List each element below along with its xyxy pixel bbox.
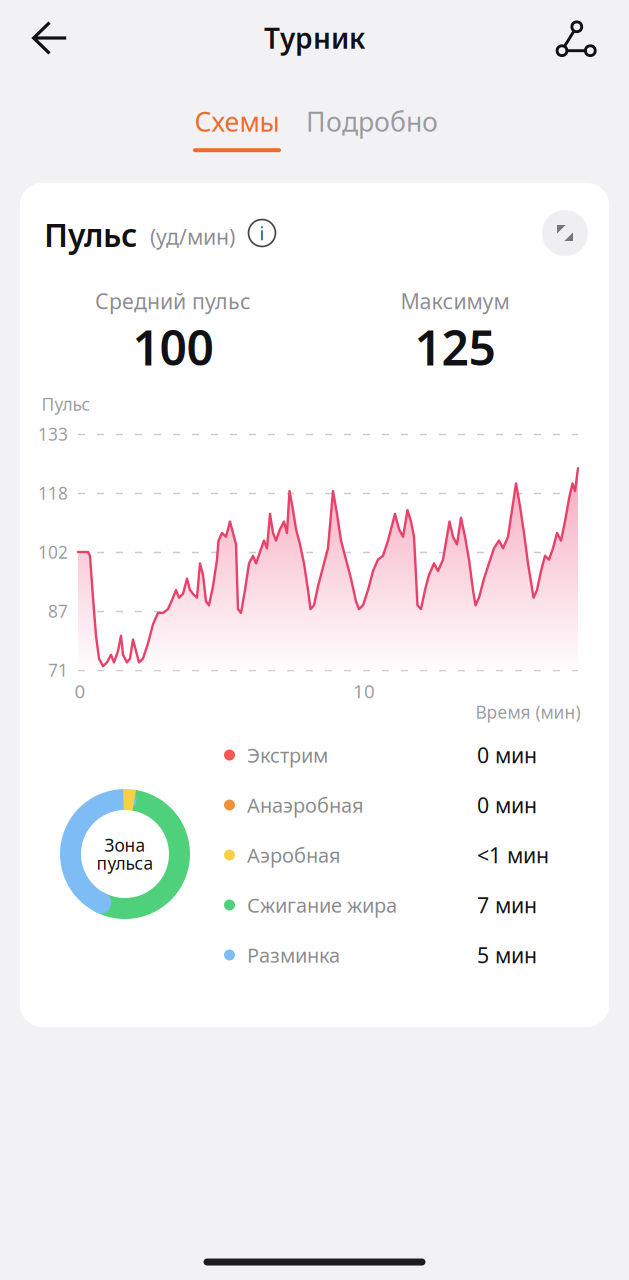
staticText: 100 xyxy=(132,315,213,379)
staticText: 71 xyxy=(48,658,68,681)
staticText: Экстрим xyxy=(247,742,328,768)
staticText: Максимум xyxy=(400,287,509,315)
button[interactable]: Share xyxy=(540,5,612,71)
staticText: i xyxy=(259,221,264,245)
staticText: 7 мин xyxy=(477,891,537,919)
staticText: Пульс xyxy=(41,392,90,415)
staticText: (уд/мин) xyxy=(150,222,235,251)
button[interactable]: Разминка xyxy=(224,930,583,980)
button[interactable]: Сжигание жира xyxy=(224,880,583,930)
staticText: Разминка xyxy=(247,942,340,968)
staticText: 118 xyxy=(38,481,68,504)
button[interactable]: Анаэробная xyxy=(224,780,583,830)
staticText: Подробно xyxy=(306,104,438,139)
staticText: 125 xyxy=(414,315,495,379)
button[interactable]: Аэробная xyxy=(224,830,583,880)
staticText: Анаэробная xyxy=(247,792,364,818)
staticText: 102 xyxy=(38,540,68,563)
staticText: пульса xyxy=(96,851,153,874)
staticText: Схемы xyxy=(194,104,279,139)
staticText: Зона xyxy=(104,833,145,856)
staticText: <1 мин xyxy=(477,841,549,869)
staticText: Пульс xyxy=(44,213,137,256)
staticText: Сжигание жира xyxy=(247,892,397,918)
button[interactable]: Back xyxy=(14,5,86,71)
staticText: Средний пульс xyxy=(95,287,251,315)
staticText: 10 xyxy=(353,679,375,703)
staticText: Время (мин) xyxy=(475,700,580,723)
button[interactable]: Экстрим xyxy=(224,730,583,780)
button[interactable]: Expand xyxy=(539,207,591,259)
staticText: 0 xyxy=(74,679,85,703)
staticText: 0 мин xyxy=(477,791,537,819)
staticText: 87 xyxy=(48,599,68,622)
staticText: Турник xyxy=(264,19,365,57)
staticText: 0 мин xyxy=(477,741,537,769)
button[interactable]: Info xyxy=(239,210,285,256)
staticText: 133 xyxy=(38,422,68,445)
button[interactable]: Подробно xyxy=(298,100,446,156)
button[interactable]: Схемы xyxy=(181,100,293,156)
staticText: Аэробная xyxy=(247,842,341,868)
staticText: 5 мин xyxy=(477,941,537,969)
